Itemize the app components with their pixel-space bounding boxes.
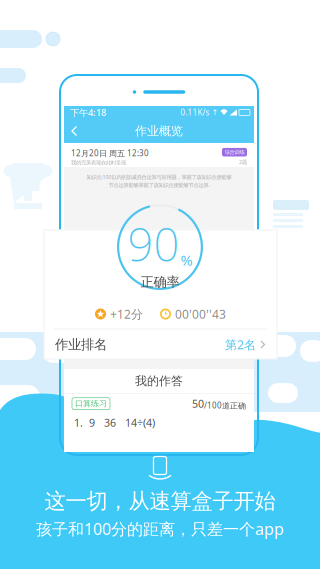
staticText: %	[180, 250, 192, 270]
staticText: 孩子和100分的距离，只差一个app	[36, 518, 284, 539]
staticText: 作业排名	[55, 336, 107, 353]
staticText: 50	[192, 397, 204, 411]
staticText: 下午4:18	[70, 106, 106, 119]
staticText: 综合训练	[224, 149, 244, 155]
staticText: ↑	[211, 108, 218, 117]
staticText: 12月20日 周五 12:30	[71, 148, 149, 158]
button[interactable]: 返回	[64, 118, 85, 143]
staticText: 00'00''43	[175, 306, 226, 322]
staticText: 90	[127, 214, 179, 274]
staticText: 节点运算能够掌握了该知识点便能够节点运算.	[108, 181, 209, 189]
staticText: +12分	[110, 306, 143, 322]
staticText: 2题	[239, 158, 247, 166]
button[interactable]: 作业排名	[44, 329, 277, 359]
staticText: 0.11K/s	[180, 107, 209, 118]
staticText: 我的作答	[135, 374, 183, 388]
staticText: 第2名	[225, 336, 256, 352]
staticText: /100道正确	[204, 400, 246, 411]
staticText: 知识点:100以内的加减混合运算与应用题，掌握了该知识点便能够	[86, 173, 231, 180]
staticText: 正确率	[140, 274, 179, 290]
staticText: 这一切，从速算盒子开始	[44, 488, 275, 514]
staticText: 1. 9 36 14÷(4)	[74, 416, 155, 430]
staticText: 口算练习	[75, 399, 107, 409]
staticText: 我的完美表现在此时呈现	[71, 159, 126, 166]
staticText: 作业概览	[135, 124, 183, 138]
